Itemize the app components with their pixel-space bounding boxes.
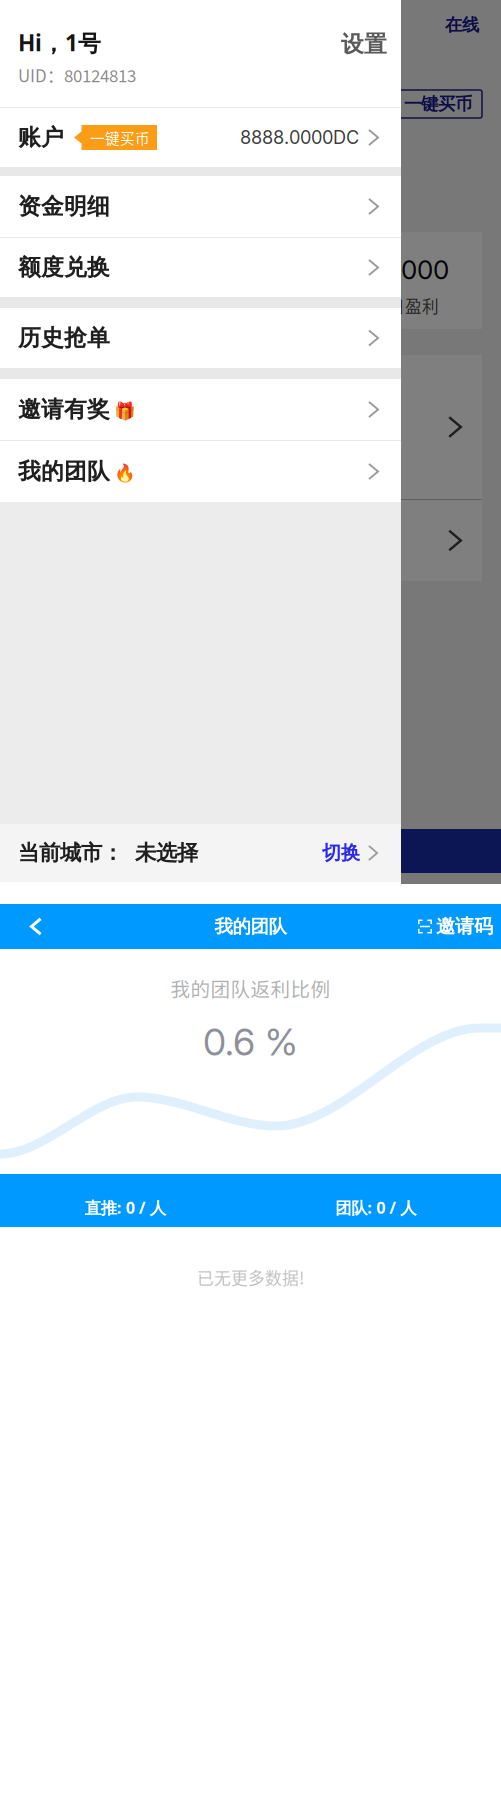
staticText: 设置 <box>341 30 387 59</box>
button[interactable]: 邀请码 <box>418 904 501 949</box>
button[interactable]: 账户 <box>0 108 401 167</box>
staticText: 我的团队 <box>18 457 110 486</box>
staticText: 0.6 % <box>203 1019 298 1065</box>
staticText: 🔥 <box>110 459 136 484</box>
staticText: 🎁 <box>110 397 136 422</box>
staticText: 额度兑换 <box>18 253 110 282</box>
staticText: 资金明细 <box>18 192 110 221</box>
button[interactable]: 设置 <box>341 27 401 59</box>
staticText: Hi，1号 <box>18 27 101 58</box>
staticText: 历史抢单 <box>18 324 110 352</box>
staticText: 团队: 0 / 人 <box>335 1196 416 1219</box>
button[interactable]: 当前城市： 未选择 <box>0 824 401 882</box>
staticText: ▶ 一键买币 <box>385 93 472 115</box>
staticText: 直推: 0 / 人 <box>85 1196 166 1219</box>
staticText: 我的团队返利比例 <box>170 974 330 1002</box>
staticText: 当前城市： 未选择 <box>18 840 198 866</box>
button[interactable]: 额度兑换 <box>0 238 401 297</box>
button[interactable]: 我的团队 <box>0 441 401 502</box>
button[interactable]: 资金明细 <box>0 176 401 237</box>
staticText: 我的团队 <box>214 915 286 938</box>
staticText: 在线 <box>445 14 479 36</box>
staticText: 切换 <box>322 841 360 865</box>
staticText: 邀请有奖 <box>18 395 110 424</box>
button[interactable]: Back <box>0 904 62 949</box>
staticText: 8888.0000 <box>316 254 449 285</box>
staticText: UID：80124813 <box>18 63 136 87</box>
staticText: 8888.0000DC <box>240 126 359 148</box>
staticText: 邀请码 <box>436 914 493 938</box>
staticText: 一键买币 <box>90 127 150 148</box>
staticText: 已无更多数据! <box>197 1265 304 1289</box>
staticText: 今日盈利 <box>371 293 439 318</box>
staticText: 账户 <box>18 123 64 152</box>
button[interactable]: 邀请有奖 <box>0 379 401 440</box>
button[interactable]: 历史抢单 <box>0 308 401 368</box>
